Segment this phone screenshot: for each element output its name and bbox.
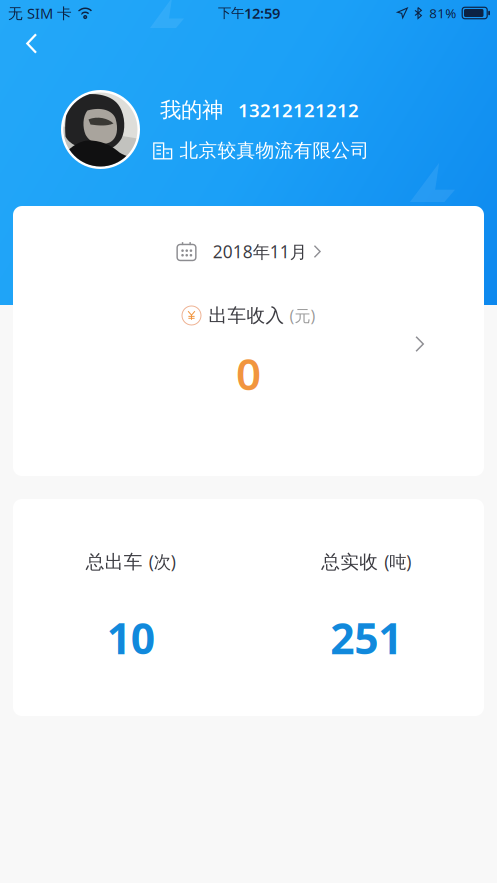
staticText: (次) xyxy=(149,550,176,573)
staticText: (元) xyxy=(289,305,315,326)
staticText: 北京较真物流有限公司 xyxy=(179,139,369,162)
staticText: 无 SIM 卡 xyxy=(8,3,72,23)
staticText: 251 xyxy=(330,609,402,666)
staticText: 0 xyxy=(236,344,261,402)
staticText: 81% xyxy=(429,4,456,22)
staticText: (吨) xyxy=(384,550,411,573)
staticText: 12:59 xyxy=(244,3,280,23)
button[interactable]: Back xyxy=(0,23,55,64)
button[interactable]: 2018年11月 xyxy=(166,232,331,271)
staticText: 出车收入 xyxy=(208,304,284,327)
staticText: 10 xyxy=(107,609,155,666)
staticText: 我的神 xyxy=(160,97,223,123)
staticText: 13212121212 xyxy=(238,97,359,122)
staticText: 总出车 xyxy=(86,551,143,573)
staticText: 下午 xyxy=(218,5,244,21)
staticText: 总实收 xyxy=(321,551,378,573)
staticText: 2018年11月 xyxy=(213,240,307,263)
button[interactable]: Income detail xyxy=(415,206,484,352)
